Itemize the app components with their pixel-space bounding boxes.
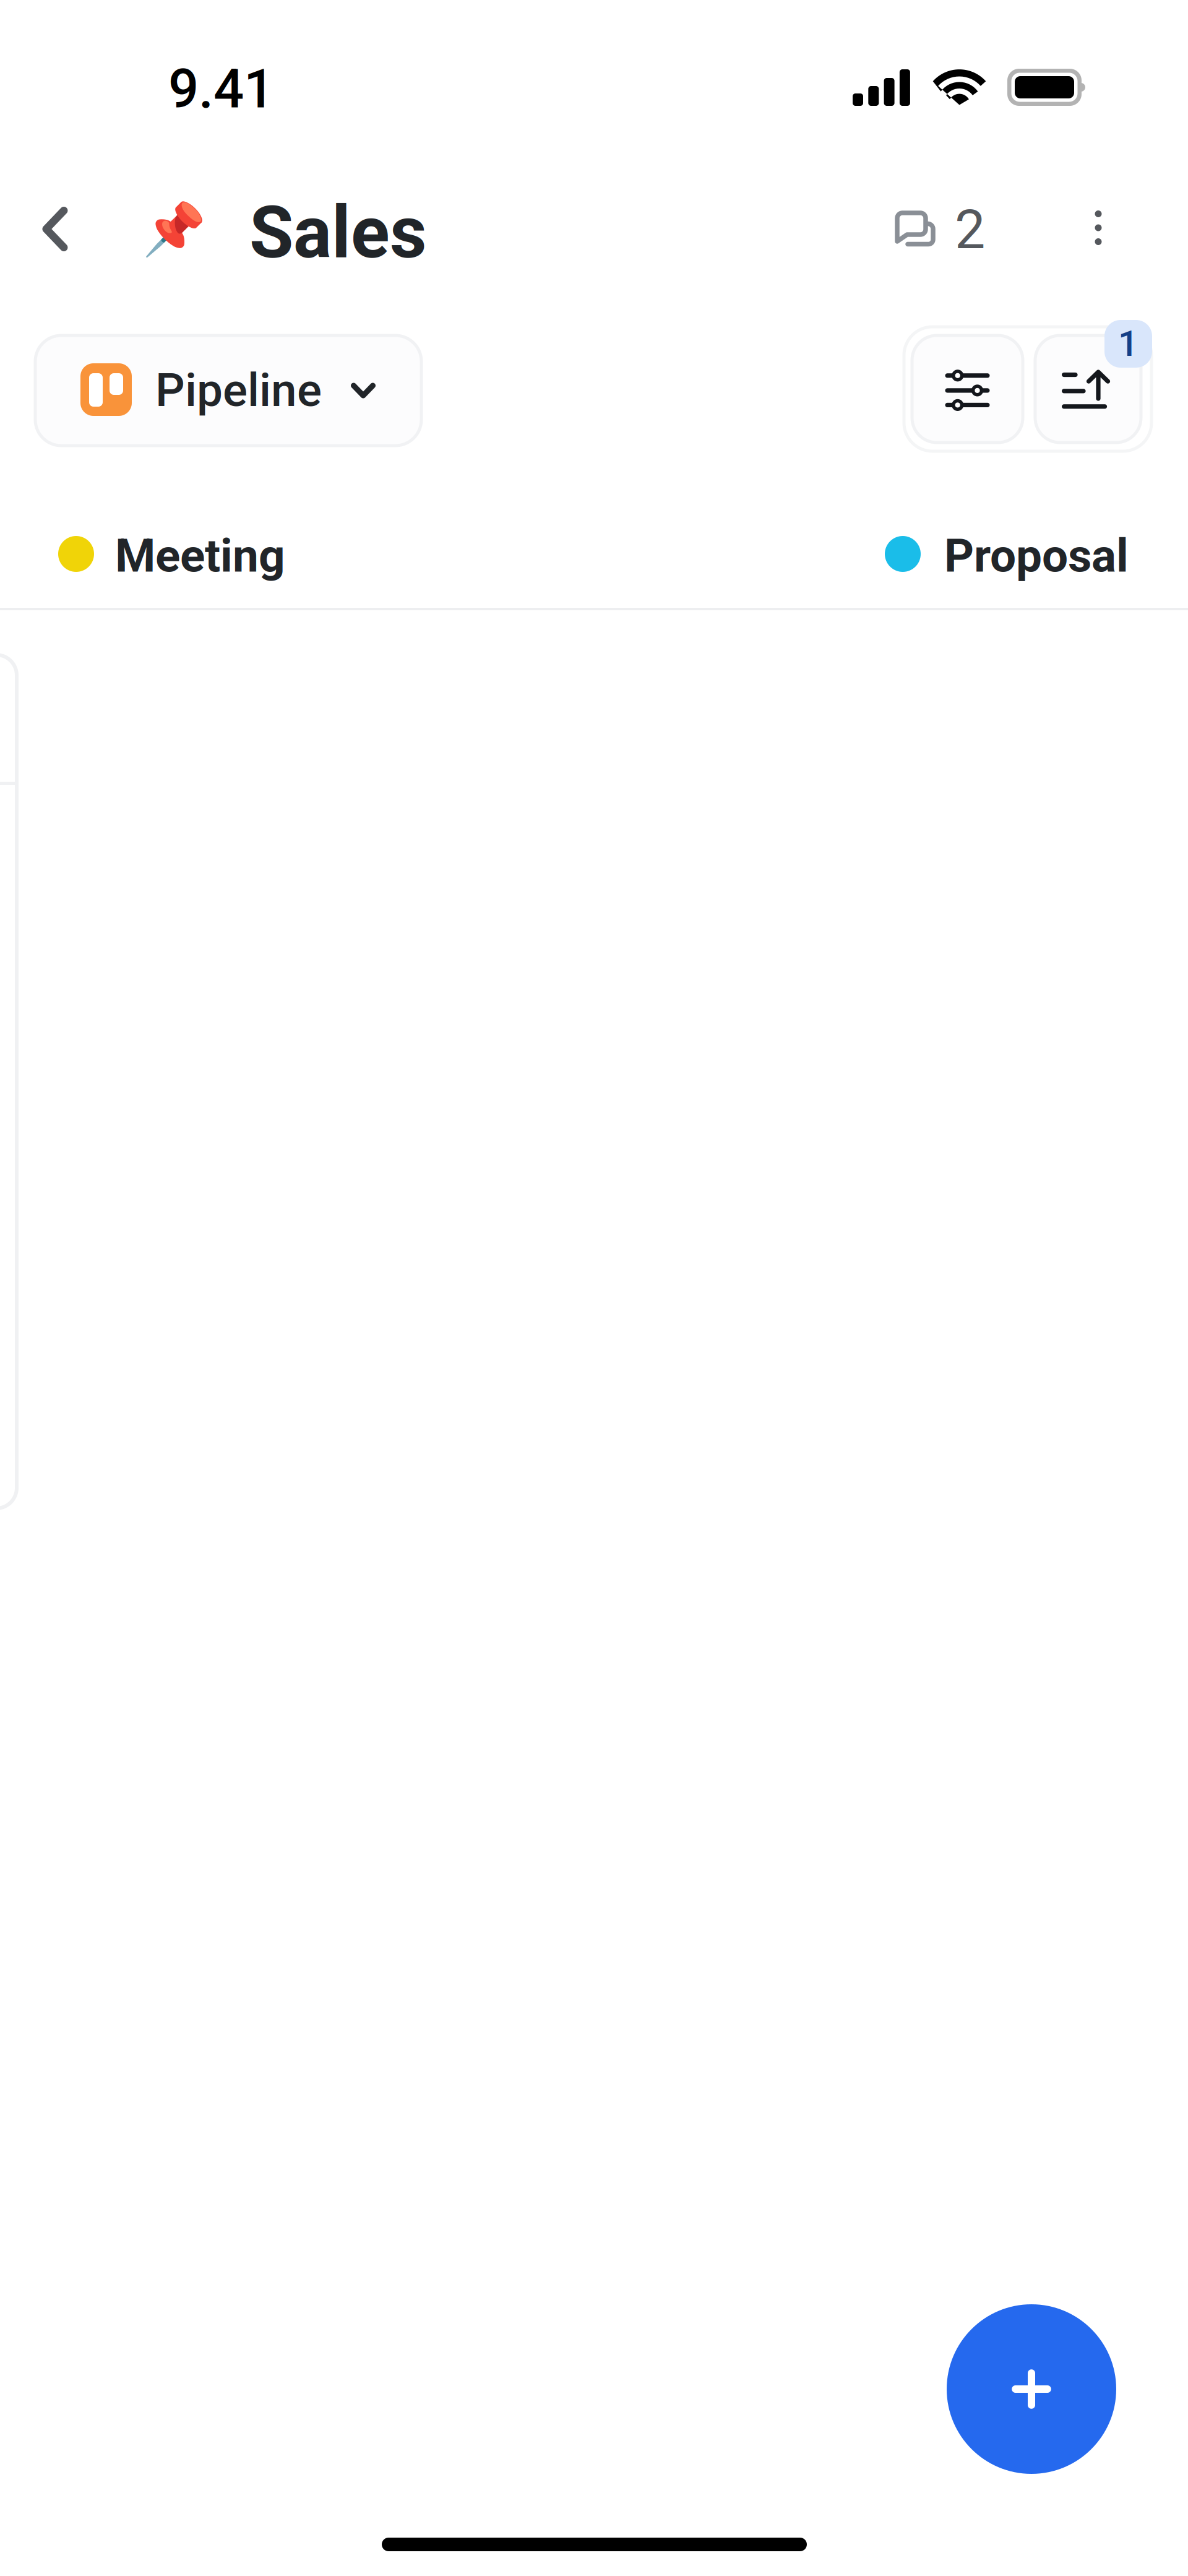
- staticText: 📌: [142, 199, 206, 259]
- staticText: Pipeline: [155, 363, 322, 417]
- staticText: 1: [1118, 323, 1138, 365]
- staticText: Meeting: [115, 529, 285, 583]
- staticText: 9.41: [168, 58, 274, 121]
- staticText: 2: [955, 198, 985, 261]
- staticText: Proposal: [944, 529, 1129, 583]
- button[interactable]: Comments: [880, 192, 997, 264]
- button[interactable]: Filter: [912, 335, 1023, 443]
- button[interactable]: Add card: [947, 2304, 1116, 2474]
- button[interactable]: Back: [21, 194, 89, 264]
- button[interactable]: Sort: [1035, 335, 1141, 443]
- staticText: Sales: [249, 191, 427, 275]
- button[interactable]: Pipeline: [35, 335, 421, 446]
- button[interactable]: More options: [1064, 193, 1132, 262]
